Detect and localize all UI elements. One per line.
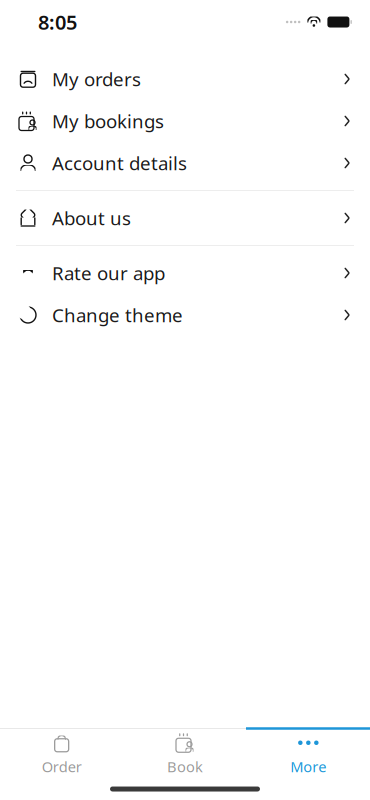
button[interactable]: My bookings	[0, 100, 370, 142]
staticText: Account details	[52, 151, 187, 175]
button[interactable]: Book	[123, 730, 247, 778]
staticText: Change theme	[52, 303, 183, 327]
staticText: About us	[52, 206, 131, 230]
staticText: Rate our app	[52, 261, 165, 285]
button[interactable]: Account details	[0, 142, 370, 184]
button[interactable]: Rate our app	[0, 252, 370, 294]
staticText: Order	[42, 757, 82, 776]
button[interactable]: My orders	[0, 58, 370, 100]
staticText: 8:05	[38, 9, 77, 35]
button[interactable]: Change theme	[0, 294, 370, 336]
staticText: My orders	[52, 67, 141, 91]
button[interactable]: About us	[0, 197, 370, 239]
button[interactable]: Order	[0, 730, 123, 778]
staticText: My bookings	[52, 109, 164, 133]
button[interactable]: More	[247, 730, 370, 778]
staticText: More	[290, 757, 326, 776]
staticText: Book	[167, 757, 203, 776]
